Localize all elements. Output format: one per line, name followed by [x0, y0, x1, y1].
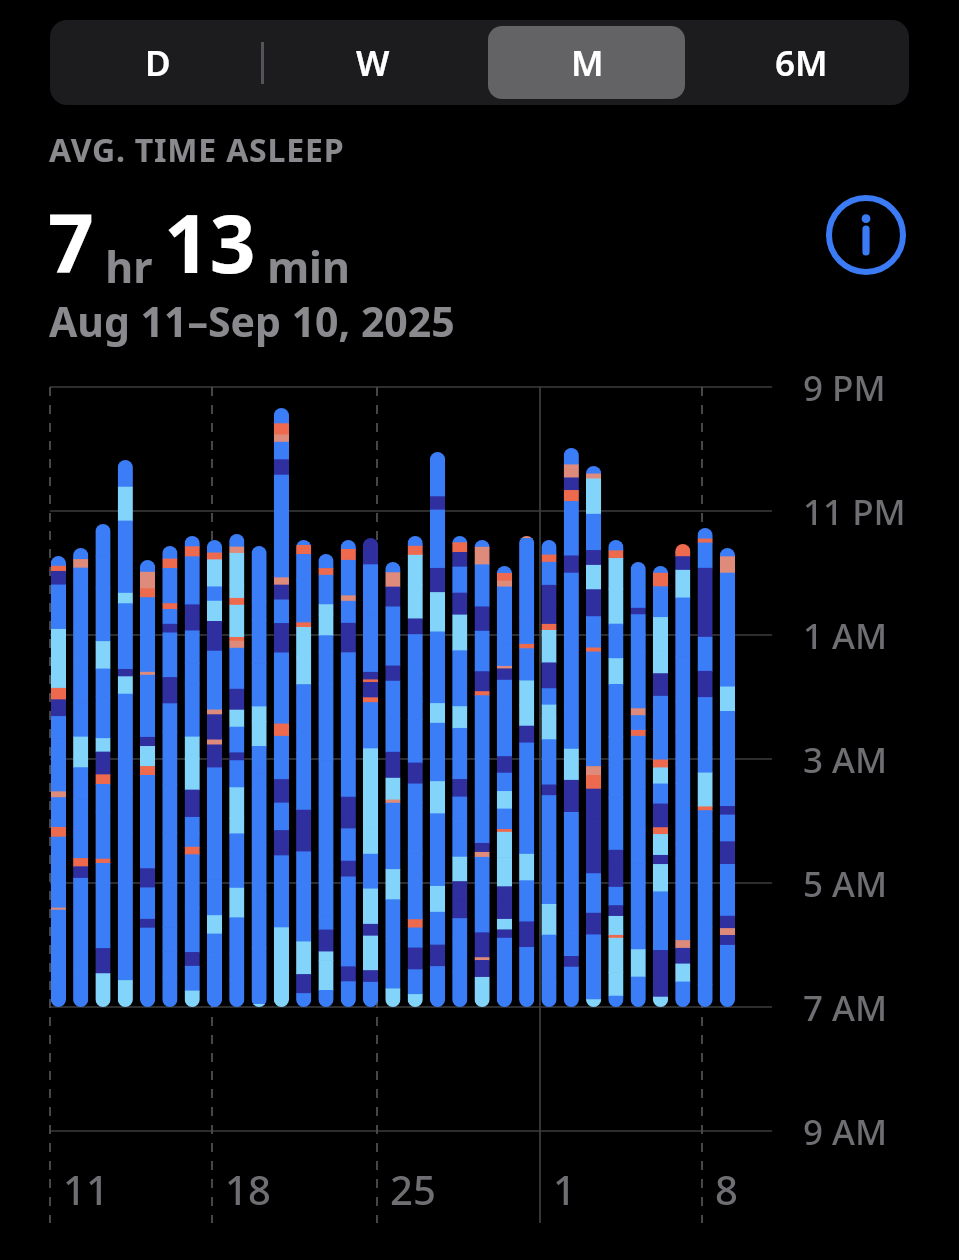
staticText: hr — [94, 237, 164, 296]
staticText: 1 — [553, 1162, 576, 1216]
staticText: 3 AM — [803, 736, 888, 784]
staticText: Aug 11–Sep 10, 2025 — [49, 293, 455, 349]
staticText: AVG. TIME ASLEEP — [49, 128, 345, 172]
button[interactable]: D — [50, 20, 265, 105]
button[interactable]: W — [265, 20, 480, 105]
staticText: 5 AM — [803, 860, 888, 908]
staticText: 13 — [164, 187, 256, 296]
staticText: 6M — [775, 39, 828, 87]
staticText: min — [256, 237, 350, 296]
staticText: 18 — [225, 1162, 271, 1216]
staticText: M — [571, 39, 604, 87]
staticText: 7 — [48, 187, 94, 296]
button[interactable]: About average time asleep — [824, 193, 908, 277]
staticText: 1 AM — [803, 612, 888, 660]
staticText: 25 — [390, 1162, 436, 1216]
staticText: 7 AM — [803, 984, 888, 1032]
staticText: 9 PM — [803, 364, 886, 412]
staticText: 9 AM — [803, 1108, 888, 1156]
staticText: 11 — [63, 1162, 109, 1216]
button[interactable]: 6M — [694, 20, 909, 105]
staticText: W — [356, 39, 390, 87]
staticText: 8 — [715, 1162, 738, 1216]
button[interactable]: M — [480, 20, 695, 105]
staticText: 11 PM — [803, 488, 906, 536]
staticText: D — [145, 39, 171, 87]
